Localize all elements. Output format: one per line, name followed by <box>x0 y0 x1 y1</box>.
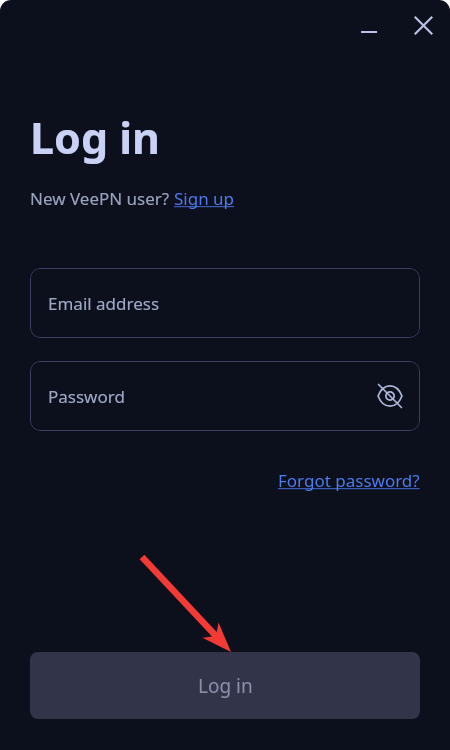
button[interactable]: Log in <box>30 652 420 719</box>
button[interactable]: Forgot password? <box>278 469 420 492</box>
button[interactable]: Close <box>403 5 444 46</box>
button[interactable]: Show password <box>368 374 412 418</box>
staticText: New VeePN user? <box>30 187 174 210</box>
staticText: Log in <box>30 108 161 167</box>
button[interactable]: Password <box>30 361 420 431</box>
staticText: Forgot password? <box>278 469 420 492</box>
button[interactable]: Email address <box>30 268 420 338</box>
button[interactable]: Sign up <box>174 187 235 210</box>
button[interactable]: Minimize <box>348 10 390 52</box>
staticText: Sign up <box>174 187 235 210</box>
staticText: Log in <box>198 673 253 699</box>
staticText: Email address <box>48 292 160 315</box>
staticText: Password <box>48 385 125 408</box>
